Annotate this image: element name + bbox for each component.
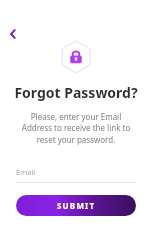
staticText: Email — [16, 167, 36, 177]
staticText: SUBMIT — [57, 200, 96, 211]
button[interactable]: Back — [2, 23, 24, 45]
staticText: Forgot Password? — [14, 83, 138, 102]
button[interactable]: SUBMIT — [16, 195, 136, 216]
staticText: Please, enter your Email Address to rece… — [16, 111, 136, 146]
button[interactable]: Email — [16, 165, 136, 179]
